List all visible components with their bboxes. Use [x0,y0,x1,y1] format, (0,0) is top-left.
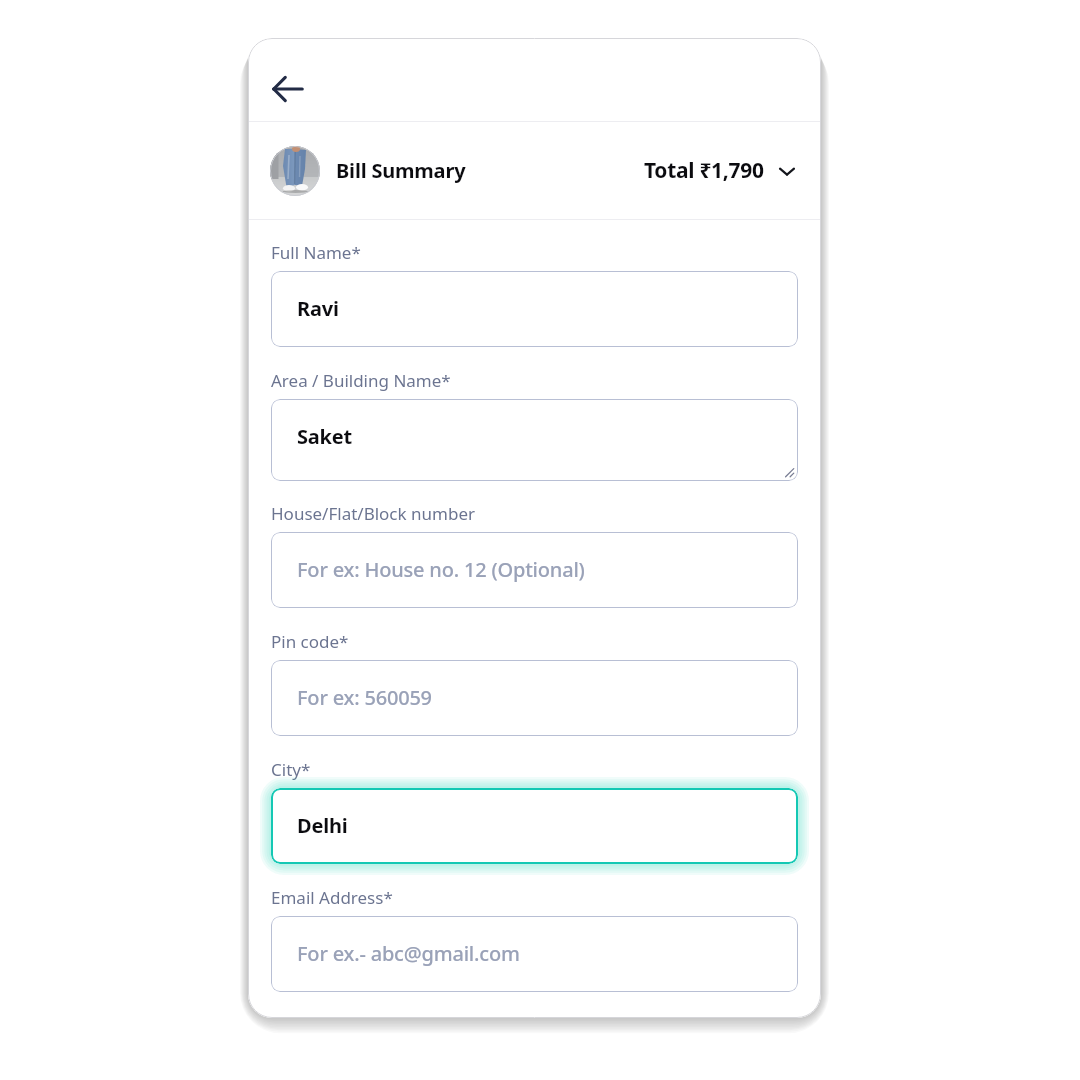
staticText: For ex: House no. 12 (Optional) [297,556,585,583]
button[interactable]: Back [257,58,319,120]
staticText: Area / Building Name* [271,369,451,392]
staticText: Bill Summary [336,157,466,184]
staticText: Full Name* [271,241,361,264]
staticText: Total ₹1,790 [644,156,764,185]
button[interactable]: Bill Summary [248,122,821,219]
staticText: For ex: 560059 [297,684,432,711]
staticText: City* [271,758,311,781]
button[interactable]: Delhi [271,788,798,864]
staticText: Delhi [297,812,348,839]
button[interactable]: Ravi [271,271,798,347]
button[interactable]: For ex: 560059 [271,660,798,736]
button[interactable]: For ex.- abc@gmail.com [271,916,798,992]
staticText: House/Flat/Block number [271,502,475,525]
staticText: Ravi [297,295,339,322]
staticText: For ex.- abc@gmail.com [297,940,520,967]
staticText: Email Address* [271,886,393,909]
staticText: Saket [297,423,353,450]
button[interactable]: For ex: House no. 12 (Optional) [271,532,798,608]
staticText: Pin code* [271,630,349,653]
button[interactable]: Saket [271,399,798,481]
